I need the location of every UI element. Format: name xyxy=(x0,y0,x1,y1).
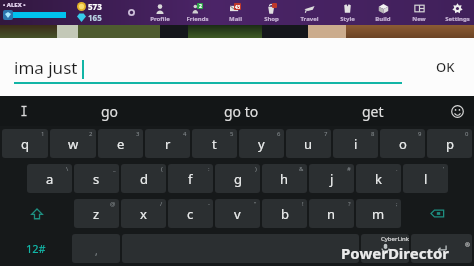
button[interactable]: i xyxy=(333,129,378,158)
button[interactable]: Profile xyxy=(141,0,178,25)
button[interactable]: Shift xyxy=(2,199,72,228)
button[interactable]: x xyxy=(121,199,166,228)
staticText: t xyxy=(212,135,217,153)
staticText: / xyxy=(160,200,163,208)
staticText: ) xyxy=(255,165,257,173)
button[interactable]: 12# xyxy=(2,234,70,263)
button[interactable]: n xyxy=(309,199,354,228)
button[interactable]: q xyxy=(2,129,48,158)
staticText: 573 xyxy=(88,1,102,12)
button[interactable]: z xyxy=(74,199,119,228)
button[interactable]: y xyxy=(239,129,284,158)
button[interactable]: Build xyxy=(365,0,401,25)
button[interactable]: d xyxy=(121,164,166,193)
staticText: 2 xyxy=(89,130,93,138)
staticText: ; xyxy=(396,200,398,208)
staticText: p xyxy=(446,135,454,153)
staticText: , xyxy=(95,244,98,258)
button[interactable]: k xyxy=(356,164,401,193)
button[interactable]: , xyxy=(72,234,120,263)
staticText: CyberLink xyxy=(381,235,410,243)
button[interactable]: r xyxy=(145,129,190,158)
button[interactable]: u xyxy=(286,129,331,158)
staticText: Profile xyxy=(150,15,170,23)
staticText: m xyxy=(372,205,385,223)
button[interactable]: Style xyxy=(329,0,365,25)
button[interactable]: s xyxy=(74,164,119,193)
button[interactable]: p xyxy=(427,129,472,158)
button[interactable]: Enter xyxy=(411,234,472,263)
staticText: u xyxy=(304,135,313,153)
staticText: # xyxy=(347,165,351,173)
button[interactable]: w xyxy=(50,129,96,158)
staticText: 6 xyxy=(277,130,281,138)
button[interactable]: Emoji xyxy=(440,96,474,126)
button[interactable]: get xyxy=(307,96,438,126)
button[interactable]: Options xyxy=(128,9,135,16)
button[interactable]: c xyxy=(168,199,213,228)
button[interactable]: o xyxy=(380,129,425,158)
staticText: OK xyxy=(436,58,455,76)
button[interactable]: f xyxy=(168,164,213,193)
staticText: • ALEX • xyxy=(3,1,26,9)
button[interactable]: v xyxy=(215,199,260,228)
staticText: PowerDirector xyxy=(341,243,450,263)
staticText: Mail xyxy=(229,15,242,23)
staticText: s xyxy=(93,170,100,188)
staticText: 3 xyxy=(136,130,140,138)
staticText: d xyxy=(140,170,148,188)
button[interactable]: Shop xyxy=(253,0,290,25)
button[interactable]: m xyxy=(356,199,401,228)
button[interactable]: l xyxy=(403,164,448,193)
staticText: go xyxy=(101,102,119,121)
staticText: j xyxy=(330,170,334,188)
staticText: 1 xyxy=(41,130,45,138)
staticText: r xyxy=(165,135,171,153)
button[interactable]: g xyxy=(215,164,260,193)
button[interactable]: a xyxy=(27,164,72,193)
staticText: - xyxy=(208,200,210,208)
staticText: New xyxy=(412,15,426,23)
button[interactable]: Settings xyxy=(437,0,474,25)
staticText: 0 xyxy=(465,130,469,138)
button[interactable]: 2 xyxy=(178,0,217,25)
staticText: f xyxy=(188,170,193,188)
button[interactable]: go to xyxy=(176,96,307,126)
staticText: n xyxy=(327,205,336,223)
staticText: i xyxy=(354,135,358,153)
staticText: k xyxy=(375,170,382,188)
button[interactable]: b xyxy=(262,199,307,228)
staticText: 4 xyxy=(183,130,187,138)
button[interactable]: Text editing xyxy=(8,96,40,126)
staticText: w xyxy=(68,135,79,153)
button[interactable]: h xyxy=(262,164,307,193)
staticText: 12# xyxy=(26,241,46,256)
staticText: v xyxy=(234,205,241,223)
button[interactable]: OK xyxy=(416,38,474,96)
staticText: e xyxy=(117,135,125,153)
button[interactable]: go xyxy=(44,96,176,126)
staticText: Friends xyxy=(186,15,209,23)
staticText: a xyxy=(46,170,54,188)
staticText: Shop xyxy=(264,15,279,23)
button[interactable]: Space xyxy=(122,234,359,263)
staticText: ! xyxy=(302,200,304,208)
button[interactable]: Backspace xyxy=(403,199,472,228)
staticText: 43 xyxy=(235,4,241,10)
staticText: z xyxy=(93,205,100,223)
staticText: 9 xyxy=(418,130,422,138)
button[interactable]: e xyxy=(98,129,143,158)
button[interactable]: Voice input xyxy=(361,234,409,263)
button[interactable]: New xyxy=(401,0,437,25)
staticText: ® xyxy=(465,241,470,249)
staticText: ? xyxy=(348,200,351,208)
staticText: Settings xyxy=(445,15,470,23)
staticText: o xyxy=(399,135,407,153)
button[interactable]: 43 xyxy=(217,0,253,25)
button[interactable]: Travel xyxy=(290,0,329,25)
staticText: Build xyxy=(375,15,391,23)
staticText: 5 xyxy=(230,130,234,138)
button[interactable]: j xyxy=(309,164,354,193)
staticText: get xyxy=(362,102,384,121)
button[interactable]: t xyxy=(192,129,237,158)
